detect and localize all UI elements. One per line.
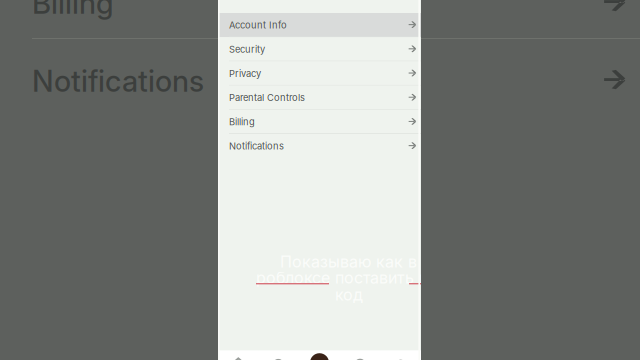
button[interactable]: Security — [218, 37, 421, 61]
button[interactable]: Profile — [299, 351, 340, 360]
button[interactable]: Messages — [340, 351, 380, 360]
button[interactable]: Billing — [218, 110, 421, 134]
button[interactable]: Search — [259, 351, 299, 360]
staticText: Billing — [229, 116, 255, 128]
staticText: Security — [229, 44, 265, 55]
staticText: Показываю как в — [280, 252, 417, 271]
button[interactable]: Account Info — [218, 13, 421, 37]
button[interactable]: Privacy — [218, 61, 421, 86]
button[interactable]: Parental Controls — [218, 86, 421, 110]
staticText: код — [335, 285, 363, 304]
staticText: Notifications — [229, 140, 284, 152]
staticText: Privacy — [229, 68, 261, 79]
staticText: Account Info — [229, 19, 287, 31]
staticText: роблоксе поставить пин — [256, 268, 446, 287]
staticText: Billing — [32, 0, 114, 21]
staticText: Parental Controls — [229, 92, 305, 103]
button[interactable]: Home — [218, 351, 259, 360]
button[interactable]: Notifications — [218, 134, 421, 158]
staticText: Notifications — [32, 63, 204, 99]
